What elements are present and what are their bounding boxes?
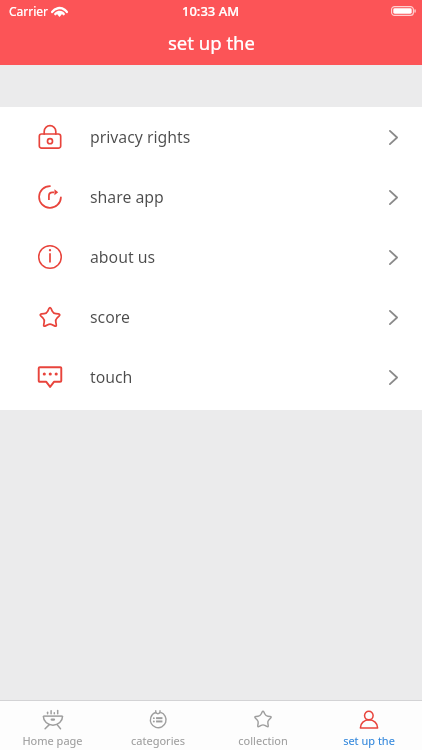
staticText: about us: [90, 246, 156, 268]
button[interactable]: score: [0, 287, 422, 347]
staticText: 10:33 AM: [182, 2, 240, 20]
button[interactable]: touch: [0, 347, 422, 407]
staticText: share app: [90, 186, 164, 208]
staticText: score: [90, 306, 130, 328]
staticText: categories: [131, 733, 185, 748]
staticText: set up the: [168, 30, 255, 55]
staticText: privacy rights: [90, 126, 191, 148]
staticText: Home page: [22, 733, 83, 748]
staticText: set up the: [343, 733, 395, 748]
button[interactable]: share app: [0, 167, 422, 227]
button[interactable]: categories: [105, 701, 210, 750]
staticText: Carrier: [9, 3, 49, 19]
staticText: touch: [90, 366, 133, 388]
button[interactable]: privacy rights: [0, 107, 422, 167]
button[interactable]: about us: [0, 227, 422, 287]
button[interactable]: collection: [210, 701, 316, 750]
button[interactable]: set up the: [316, 701, 422, 750]
staticText: collection: [238, 733, 288, 748]
button[interactable]: Home page: [0, 701, 105, 750]
